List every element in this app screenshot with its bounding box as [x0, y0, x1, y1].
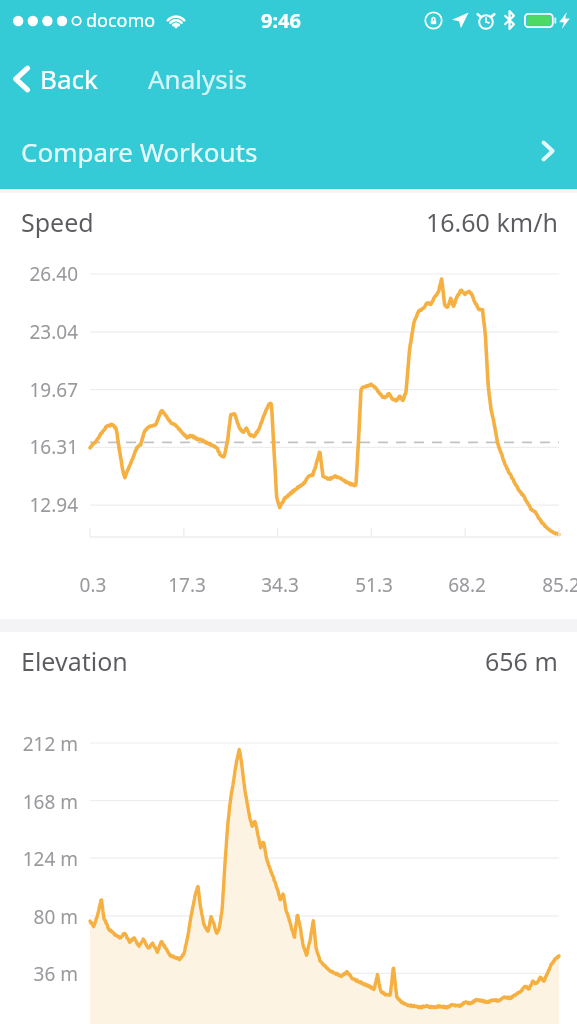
other: Compare Workouts — [539, 137, 557, 165]
staticText: 17.3 — [157, 572, 217, 598]
staticText: Speed — [21, 205, 94, 239]
staticText: 26.40 — [4, 261, 78, 287]
staticText: 19.67 — [4, 377, 78, 403]
staticText: 16.60 km/h — [426, 205, 558, 239]
staticText: 212 m — [4, 731, 78, 757]
staticText: 68.2 — [437, 572, 497, 598]
staticText: 656 m — [485, 644, 558, 678]
staticText: 12.94 — [4, 492, 78, 518]
staticText: 9:46 — [261, 7, 301, 34]
staticText: docomo — [86, 8, 156, 33]
staticText: Analysis — [148, 61, 247, 96]
staticText: 124 m — [4, 846, 78, 872]
staticText: 0.3 — [63, 572, 123, 598]
staticText: 168 m — [4, 789, 78, 815]
staticText: 80 m — [4, 904, 78, 930]
staticText: 16.31 — [4, 434, 78, 460]
staticText: 36 m — [4, 961, 78, 987]
staticText: Elevation — [21, 644, 128, 678]
button[interactable]: Back — [0, 55, 108, 102]
staticText: 85.2 — [531, 572, 577, 598]
staticText: 23.04 — [4, 319, 78, 345]
staticText: 34.3 — [250, 572, 310, 598]
staticText: 51.3 — [344, 572, 404, 598]
button[interactable]: Compare Workouts — [0, 119, 577, 183]
staticText: Back — [40, 61, 98, 96]
staticText: Compare Workouts — [21, 134, 258, 169]
